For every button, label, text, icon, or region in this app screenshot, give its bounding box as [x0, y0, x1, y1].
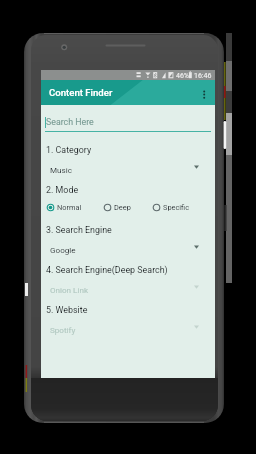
staticText: 4. Search Engine(Deep Search): [46, 265, 168, 275]
staticText: 46%: [176, 72, 189, 80]
staticText: Spotify: [50, 325, 76, 334]
staticText: Content Finder: [49, 87, 113, 98]
staticText: Google: [50, 245, 76, 254]
staticText: 1. Category: [46, 145, 92, 155]
staticText: 3. Search Engine: [46, 225, 112, 235]
staticText: Deep: [114, 203, 131, 212]
button[interactable]: Google: [45, 242, 211, 257]
button[interactable]: Deep: [103, 203, 131, 212]
button[interactable]: Music: [45, 162, 211, 177]
button[interactable]: Search Here: [45, 114, 211, 132]
button[interactable]: Spotify: [45, 322, 211, 337]
button[interactable]: Content Finder: [41, 80, 215, 105]
staticText: Search Here: [46, 117, 94, 127]
button[interactable]: Specific: [152, 203, 190, 212]
staticText: 16:46: [194, 72, 212, 80]
staticText: Music: [50, 165, 72, 174]
button[interactable]: Onion Link: [45, 282, 211, 297]
staticText: Onion Link: [50, 285, 88, 294]
button[interactable]: More options: [195, 80, 215, 105]
staticText: Specific: [163, 203, 190, 212]
staticText: 2. Mode: [46, 185, 79, 195]
staticText: Normal: [57, 203, 82, 212]
button[interactable]: Normal: [46, 203, 82, 212]
staticText: 5. Website: [46, 305, 88, 315]
